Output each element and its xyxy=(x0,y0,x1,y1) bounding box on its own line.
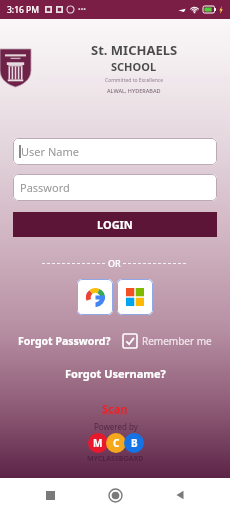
button[interactable]: Forgot Password? xyxy=(18,331,111,351)
staticText: M xyxy=(93,436,103,450)
button[interactable]: Forgot Username? xyxy=(59,364,172,383)
staticText: Password xyxy=(20,180,70,195)
staticText: Remember me xyxy=(142,334,212,348)
button[interactable]: User Name xyxy=(13,138,217,165)
button[interactable]: Back xyxy=(165,480,195,510)
staticText: MYCLASSBOARD xyxy=(87,454,144,464)
staticText: 3:16 PM xyxy=(7,4,40,16)
staticText: St. MICHAELS xyxy=(91,41,178,59)
staticText: SCHOOL xyxy=(111,59,157,74)
staticText: C xyxy=(113,436,120,450)
button[interactable]: Remember me xyxy=(123,332,212,350)
staticText: ••• xyxy=(78,5,86,15)
staticText: Committed to Excellence xyxy=(105,77,164,84)
button[interactable]: LOGIN xyxy=(13,212,217,237)
staticText: User Name xyxy=(21,144,79,159)
staticText: OR xyxy=(108,257,121,269)
button[interactable]: Scan xyxy=(94,399,136,418)
button[interactable]: Sign in with Microsoft xyxy=(117,279,153,315)
staticText: B xyxy=(131,436,138,450)
staticText: Scan xyxy=(102,401,128,416)
button[interactable]: Sign in with Google xyxy=(77,279,113,315)
staticText: Powered by xyxy=(94,421,138,432)
staticText: ALWAL, HYDERABAD xyxy=(107,87,161,94)
staticText: Forgot Password? xyxy=(18,334,111,348)
staticText: LOGIN xyxy=(97,217,133,232)
button[interactable]: Recents xyxy=(35,480,65,510)
button[interactable]: Password xyxy=(13,174,217,201)
staticText: Forgot Username? xyxy=(65,366,166,381)
button[interactable]: Home xyxy=(100,480,130,510)
